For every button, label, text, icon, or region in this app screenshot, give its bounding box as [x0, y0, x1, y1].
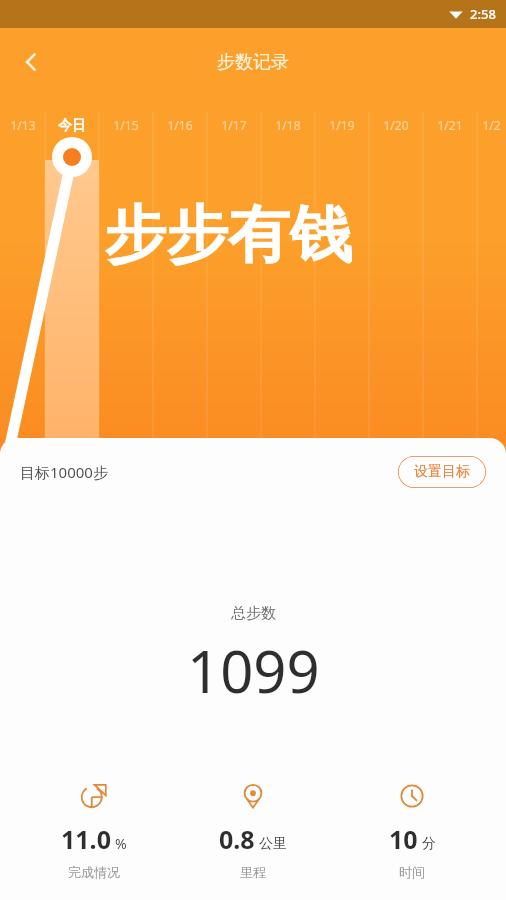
staticText: 今日: [58, 117, 86, 135]
button[interactable]: 1/15: [99, 117, 153, 133]
button[interactable]: 0.8: [188, 782, 318, 880]
staticText: 1/13: [10, 117, 36, 133]
button[interactable]: 1/16: [153, 117, 207, 133]
staticText: 总步数: [231, 604, 276, 623]
staticText: 1/18: [275, 117, 301, 133]
staticText: 1/19: [329, 117, 355, 133]
staticText: 设置目标: [414, 463, 470, 481]
button[interactable]: 11.0: [29, 782, 159, 880]
button[interactable]: 1/13: [0, 117, 45, 133]
button[interactable]: 1/2: [477, 117, 506, 133]
staticText: 1099: [187, 631, 320, 710]
button[interactable]: 1/19: [315, 117, 369, 133]
staticText: 1/2: [482, 117, 501, 133]
staticText: 步数记录: [217, 51, 289, 74]
staticText: 0.8: [219, 822, 255, 856]
staticText: 分: [422, 835, 436, 853]
button[interactable]: 1/21: [423, 117, 477, 133]
button[interactable]: 设置目标: [398, 456, 486, 488]
button[interactable]: 1/18: [261, 117, 315, 133]
staticText: 目标10000步: [20, 462, 108, 482]
staticText: 1/20: [383, 117, 409, 133]
staticText: 时间: [399, 864, 425, 880]
staticText: 1/21: [437, 117, 463, 133]
button[interactable]: Back: [8, 39, 54, 85]
staticText: %: [115, 834, 127, 853]
button[interactable]: 10: [347, 782, 477, 880]
staticText: 10: [389, 822, 418, 856]
staticText: 1/16: [167, 117, 193, 133]
staticText: 1/15: [113, 117, 139, 133]
button[interactable]: 今日: [45, 117, 99, 135]
button[interactable]: 1/20: [369, 117, 423, 133]
staticText: 步步有钱: [104, 196, 352, 274]
staticText: 完成情况: [68, 864, 120, 880]
staticText: 11.0: [61, 822, 111, 856]
staticText: 2:58: [470, 5, 496, 23]
staticText: 公里: [259, 835, 287, 853]
staticText: 1/17: [221, 117, 247, 133]
staticText: 里程: [240, 864, 266, 880]
button[interactable]: 1/17: [207, 117, 261, 133]
